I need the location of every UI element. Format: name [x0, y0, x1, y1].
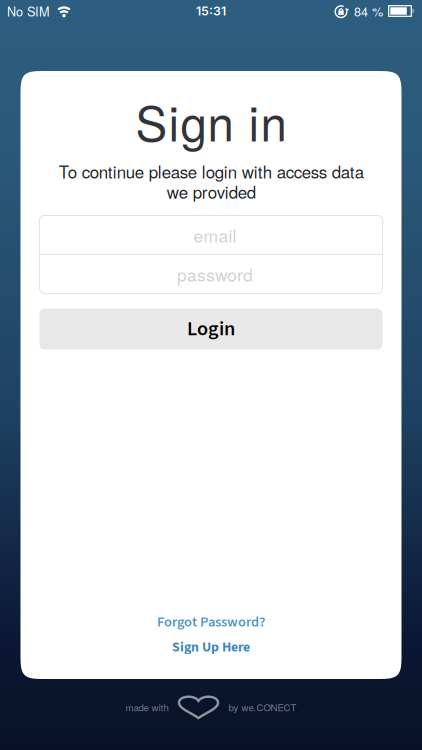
staticText: No SIM: [7, 2, 50, 20]
staticText: Sign in: [135, 87, 286, 155]
staticText: 15:31: [196, 3, 226, 18]
button[interactable]: email: [39, 215, 382, 254]
staticText: 84 %: [354, 2, 383, 20]
staticText: email: [193, 222, 236, 247]
button[interactable]: password: [39, 254, 382, 293]
staticText: Login: [187, 314, 235, 343]
staticText: To continue please login with access dat…: [58, 159, 363, 203]
button[interactable]: Forgot Password?: [157, 612, 265, 632]
staticText: password: [177, 261, 253, 286]
button[interactable]: Login: [39, 308, 382, 349]
staticText: by we.CONECT: [228, 700, 296, 714]
staticText: Sign Up Here: [172, 637, 250, 657]
button[interactable]: Sign Up Here: [172, 637, 250, 657]
staticText: Forgot Password?: [157, 612, 265, 632]
staticText: made with: [125, 700, 168, 714]
